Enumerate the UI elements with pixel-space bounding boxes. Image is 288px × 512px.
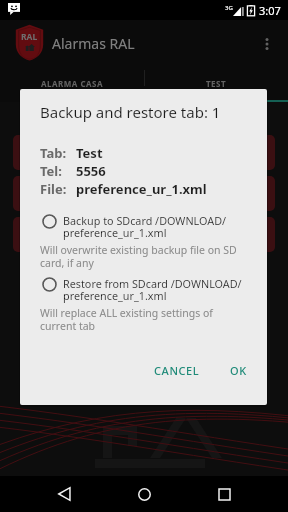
button[interactable]: OK (222, 357, 255, 384)
staticText: Will overwrite existing backup file on S… (40, 243, 245, 270)
staticText: Alarmas RAL (52, 34, 135, 53)
staticText: TEST (206, 78, 227, 89)
staticText: Will replace ALL existing settings of cu… (40, 306, 245, 333)
staticText: 3:07 (259, 3, 281, 18)
button[interactable]: Restore from SDcard /DOWNLOAD/ preferenc… (20, 276, 267, 333)
button[interactable]: Backup to SDcard /DOWNLOAD/ preference_u… (20, 213, 267, 270)
button[interactable]: Back (44, 476, 85, 512)
button[interactable]: CANCEL (146, 357, 208, 384)
staticText: 3G (225, 4, 233, 12)
staticText: Restore from SDcard /DOWNLOAD/ preferenc… (63, 276, 242, 303)
staticText: Test (76, 144, 103, 162)
staticText: preference_ur_1.xml (76, 180, 207, 198)
staticText: CANCEL (154, 363, 200, 378)
button[interactable]: ALARMA CASA (0, 68, 144, 102)
button[interactable]: TEST (144, 68, 288, 102)
staticText: Tel: (40, 162, 62, 180)
staticText: RAL (21, 31, 38, 43)
staticText: ALARMA CASA (41, 78, 104, 89)
staticText: Backup to SDcard /DOWNLOAD/ preference_u… (63, 213, 227, 240)
button[interactable] (13, 135, 275, 170)
staticText: Tab: (40, 144, 67, 162)
button[interactable]: Home (124, 476, 165, 512)
staticText: OK (230, 363, 247, 378)
button[interactable]: Recents (204, 476, 245, 512)
button[interactable] (13, 176, 275, 211)
staticText: Backup and restore tab: 1 (40, 102, 221, 122)
button[interactable] (13, 217, 275, 252)
staticText: File: (40, 180, 67, 198)
staticText: 5556 (76, 162, 106, 180)
button[interactable]: More options (250, 27, 284, 61)
